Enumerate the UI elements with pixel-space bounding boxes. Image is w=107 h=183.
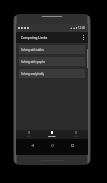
button[interactable]: Practice xyxy=(41,130,63,139)
button[interactable]: Profile xyxy=(65,130,87,139)
staticText: Computing Limits xyxy=(21,36,48,40)
button[interactable]: Recents xyxy=(68,141,76,149)
button[interactable]: Solving analytically xyxy=(19,69,85,78)
button[interactable]: Home xyxy=(48,141,56,149)
staticText: Solving with graphs xyxy=(21,60,45,64)
button[interactable]: Solving with tables xyxy=(19,45,85,54)
button[interactable]: Back xyxy=(28,141,36,149)
button[interactable]: Solving with graphs xyxy=(19,57,85,66)
staticText: Solving with tables xyxy=(21,48,44,52)
staticText: Solving analytically xyxy=(21,72,44,76)
button[interactable]: Learn xyxy=(18,130,40,139)
staticText: 12:30 xyxy=(78,26,86,30)
staticText: Profile xyxy=(73,135,80,138)
button[interactable]: More options xyxy=(80,34,87,41)
staticText: Learn xyxy=(26,135,32,138)
staticText: Practice xyxy=(48,135,56,138)
